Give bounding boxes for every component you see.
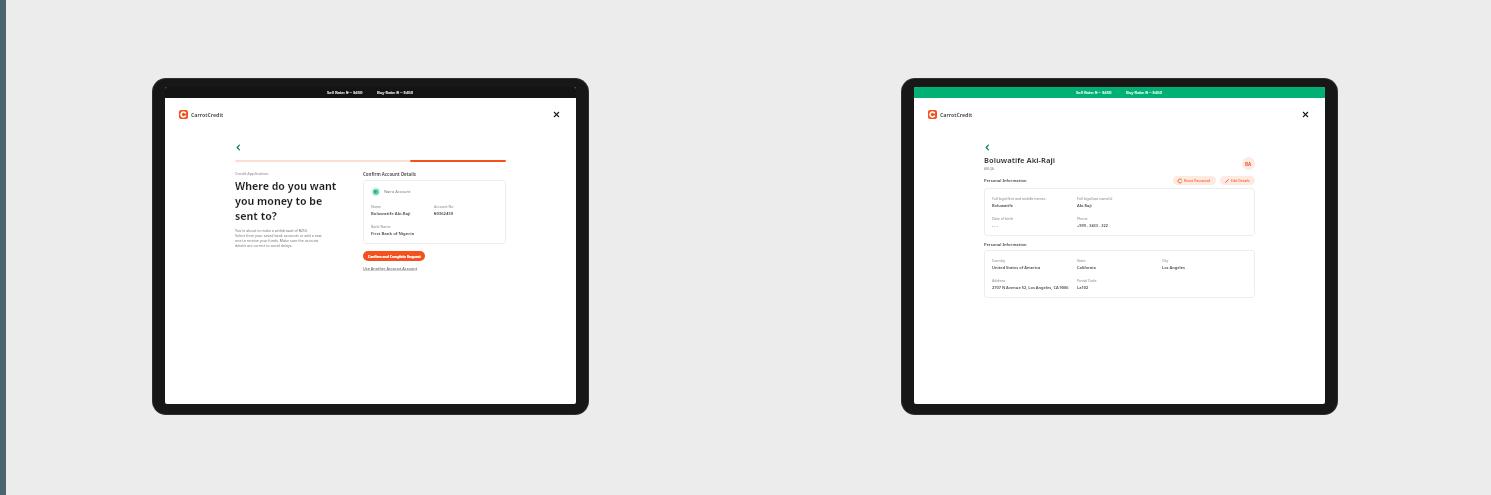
staticText: Credit Application	[235, 171, 269, 176]
staticText: Full legal first and middle names	[992, 196, 1046, 201]
staticText: 2707 N Avenue 52, Los Angeles, CA 9006	[992, 285, 1069, 290]
staticText: Reset Password	[1184, 178, 1211, 183]
staticText: ₦0362430	[434, 211, 454, 217]
staticText: Aki-Raji	[1077, 203, 1092, 208]
staticText: Boluwatife Aki-Raji	[984, 155, 1055, 165]
button[interactable]: Back	[235, 142, 245, 152]
staticText: Country	[992, 258, 1006, 263]
staticText: Full legal last name(s)	[1077, 196, 1113, 201]
staticText: Account No	[434, 204, 454, 209]
staticText: Date of birth	[992, 216, 1013, 221]
staticText: Use Another Account Account	[363, 266, 418, 271]
staticText: BA	[1245, 161, 1252, 167]
button[interactable]: Edit Details	[1220, 176, 1255, 185]
staticText: First Bank of Nigeria	[371, 231, 414, 237]
button[interactable]: CarrotCredit	[179, 110, 224, 119]
staticText: Buy Rate: ₦ ~ $450	[377, 90, 414, 96]
staticText: +999 - 3433 - 322	[1077, 223, 1109, 228]
staticText: Los Angeles	[1162, 265, 1186, 270]
staticText: Edit Details	[1231, 178, 1250, 183]
staticText: CarrotCredit	[940, 111, 973, 118]
staticText: CarrotCredit	[191, 111, 224, 118]
staticText: Naira Account	[384, 189, 411, 194]
staticText: Buy Rate: ₦ ~ $450	[1126, 90, 1163, 96]
staticText: La102	[1077, 285, 1089, 290]
staticText: Confirm and Complete Request	[368, 254, 421, 259]
staticText: - - -	[992, 223, 998, 228]
staticText: ABUJA	[984, 166, 994, 171]
staticText: Personal Information	[984, 242, 1027, 247]
staticText: Boluwatife Aki-Raji	[371, 211, 411, 217]
staticText: Bank Name	[371, 224, 391, 229]
button[interactable]: Use Another Account Account	[363, 266, 418, 271]
staticText: State	[1077, 258, 1086, 263]
staticText: Confirm Account Details	[363, 171, 417, 177]
button[interactable]: Reset Password	[1173, 176, 1216, 185]
button[interactable]: Profile avatar	[1242, 157, 1255, 170]
staticText: Address	[992, 278, 1006, 283]
staticText: You're about to make a withdrawal of ₦25…	[235, 228, 322, 248]
button[interactable]: Confirm and Complete Request	[363, 251, 425, 261]
staticText: Sell Rate: ₦ ~ $450	[327, 90, 363, 96]
staticText: Boluwatife	[992, 203, 1014, 208]
staticText: City	[1162, 258, 1169, 263]
staticText: Phone	[1077, 216, 1088, 221]
staticText: Postal Code	[1077, 278, 1097, 283]
button[interactable]: Back	[984, 142, 994, 152]
staticText: Personal Information	[984, 178, 1027, 183]
staticText: United States of America	[992, 265, 1041, 270]
staticText: Name	[371, 204, 382, 209]
button[interactable]: Close	[1299, 108, 1311, 120]
button[interactable]: Close	[550, 108, 562, 120]
button[interactable]: CarrotCredit	[928, 110, 973, 119]
staticText: California	[1077, 265, 1096, 270]
staticText: Where do you want you money to be sent t…	[235, 179, 337, 223]
staticText: Sell Rate: ₦ ~ $450	[1076, 90, 1112, 96]
